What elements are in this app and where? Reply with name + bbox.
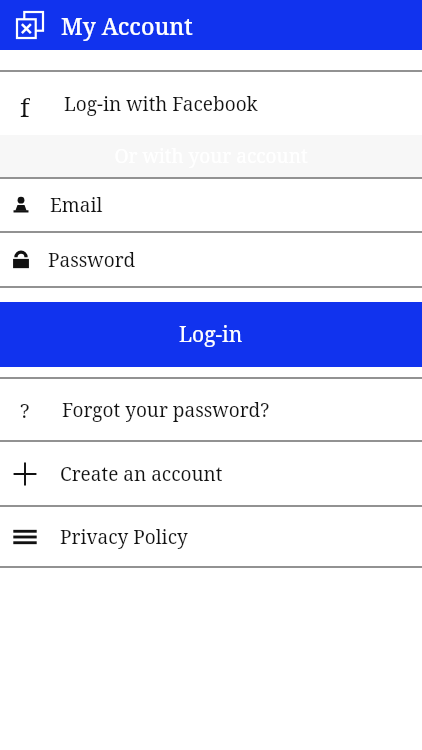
button[interactable]: f bbox=[0, 72, 422, 135]
button[interactable]: Privacy Policy bbox=[0, 507, 422, 566]
staticText: Forgot your password? bbox=[62, 397, 270, 423]
staticText: Log-in bbox=[179, 320, 243, 349]
staticText: Email bbox=[50, 192, 103, 218]
staticText: ? bbox=[20, 397, 30, 423]
button[interactable]: ? bbox=[0, 379, 422, 440]
staticText: Log-in with Facebook bbox=[64, 91, 258, 117]
staticText: Create an account bbox=[60, 461, 223, 487]
staticText: Password bbox=[48, 247, 136, 273]
button[interactable]: Create an account bbox=[0, 442, 422, 505]
button[interactable]: Close bbox=[14, 9, 46, 41]
staticText: My Account bbox=[61, 10, 193, 41]
staticText: f bbox=[20, 89, 30, 119]
button[interactable]: Log-in bbox=[0, 302, 422, 367]
button[interactable]: Password bbox=[0, 233, 422, 286]
button[interactable]: Email bbox=[0, 179, 422, 231]
staticText: Privacy Policy bbox=[60, 524, 188, 550]
